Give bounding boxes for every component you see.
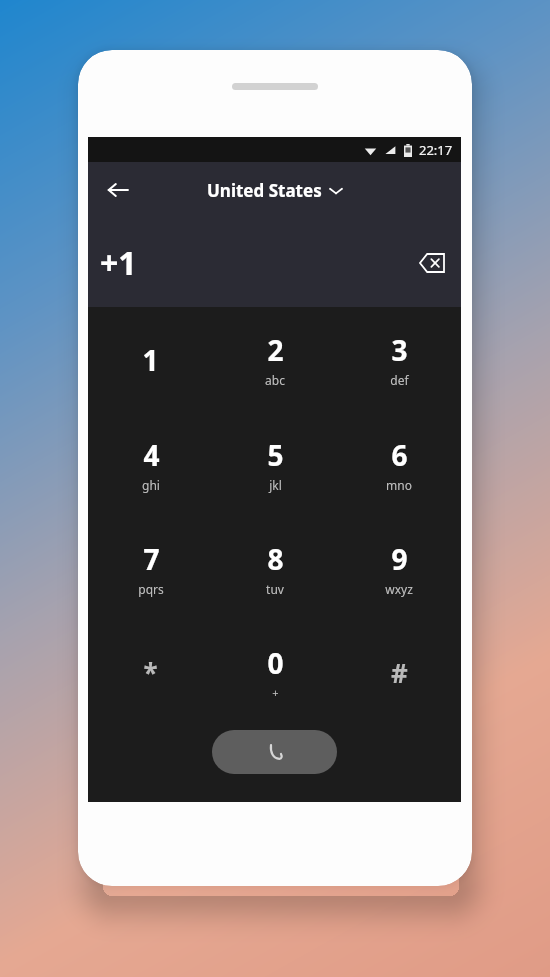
- staticText: 8: [267, 540, 284, 578]
- button[interactable]: 1: [88, 307, 213, 412]
- button[interactable]: Back: [96, 168, 140, 212]
- staticText: United States: [207, 179, 322, 202]
- staticText: def: [390, 372, 409, 388]
- staticText: 1: [142, 341, 159, 379]
- button[interactable]: 0: [213, 620, 337, 724]
- staticText: tuv: [266, 581, 284, 597]
- button[interactable]: Call: [212, 730, 337, 774]
- button[interactable]: United States: [201, 175, 348, 206]
- staticText: 6: [391, 436, 408, 474]
- button[interactable]: 6: [337, 412, 461, 516]
- staticText: 2: [267, 331, 284, 369]
- staticText: 0: [267, 644, 284, 682]
- staticText: #: [391, 655, 408, 690]
- staticText: 9: [391, 540, 408, 578]
- button[interactable]: 3: [337, 307, 461, 412]
- staticText: 5: [267, 436, 284, 474]
- staticText: 3: [391, 331, 408, 369]
- button[interactable]: Backspace: [411, 242, 453, 284]
- button[interactable]: #: [337, 620, 461, 724]
- staticText: 7: [143, 540, 160, 578]
- button[interactable]: 8: [213, 516, 337, 620]
- staticText: wxyz: [385, 581, 413, 597]
- button[interactable]: 7: [88, 516, 213, 620]
- button[interactable]: 4: [88, 412, 213, 516]
- button[interactable]: 5: [213, 412, 337, 516]
- staticText: pqrs: [138, 581, 164, 597]
- staticText: 4: [143, 436, 160, 474]
- button[interactable]: 2: [213, 307, 337, 412]
- staticText: *: [143, 655, 158, 690]
- staticText: abc: [265, 372, 285, 388]
- staticText: +: [272, 685, 279, 700]
- staticText: ghi: [142, 477, 160, 493]
- staticText: 22:17: [419, 141, 453, 159]
- staticText: +1: [100, 241, 137, 285]
- staticText: mno: [386, 477, 412, 493]
- button[interactable]: 9: [337, 516, 461, 620]
- staticText: jkl: [269, 477, 282, 493]
- button[interactable]: *: [88, 620, 213, 724]
